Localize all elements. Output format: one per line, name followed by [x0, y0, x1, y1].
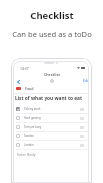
- button[interactable]: Sweden: [16, 132, 84, 140]
- staticText: Can be used as a toDo: [12, 29, 92, 39]
- button[interactable]: Edit: [82, 77, 89, 83]
- button[interactable]: Back: [15, 78, 22, 85]
- staticText: Tom pre burg: [24, 125, 42, 129]
- button[interactable]: London: [16, 141, 84, 149]
- staticText: Hard gaming: [24, 116, 41, 120]
- staticText: Food: [25, 86, 34, 91]
- button[interactable]: Tom pre burg: [16, 123, 84, 131]
- staticText: Checklist: [30, 9, 74, 22]
- button[interactable]: Add item: [48, 77, 55, 84]
- staticText: Enter Body: [17, 152, 36, 157]
- staticText: Edit: [83, 78, 89, 83]
- button[interactable]: Hard gaming: [16, 114, 84, 122]
- staticText: Sweden: [24, 134, 34, 138]
- button[interactable]: Picking stock: [16, 105, 84, 113]
- staticText: List of what you want to eat: [15, 95, 83, 102]
- staticText: Checklist: [44, 72, 60, 77]
- staticText: 14:37: [20, 66, 29, 71]
- staticText: Picking stock: [24, 107, 41, 111]
- staticText: London: [24, 143, 34, 147]
- button[interactable]: Food: [16, 85, 87, 91]
